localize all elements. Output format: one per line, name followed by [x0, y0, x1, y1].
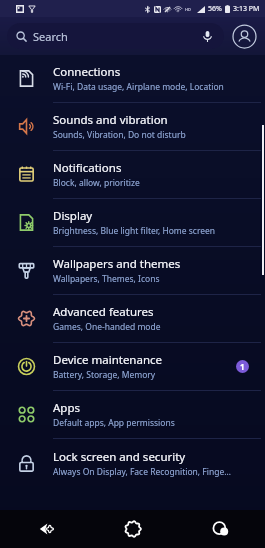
- staticText: Connections: [53, 64, 121, 80]
- staticText: Wallpapers and themes: [53, 256, 181, 272]
- staticText: Wallpapers, Themes, Icons: [53, 273, 160, 285]
- button[interactable]: Connections: [0, 55, 265, 103]
- button[interactable]: Back: [0, 510, 89, 548]
- staticText: Device maintenance: [53, 352, 163, 368]
- staticText: 1: [240, 361, 245, 372]
- staticText: Games, One-handed mode: [53, 321, 161, 333]
- staticText: Wi-Fi, Data usage, Airplane mode, Locati…: [53, 81, 224, 93]
- button[interactable]: Lock screen and security: [0, 439, 265, 487]
- button[interactable]: Display: [0, 199, 265, 247]
- staticText: Block, allow, prioritize: [53, 177, 140, 189]
- staticText: Advanced features: [53, 304, 154, 320]
- button[interactable]: Account: [231, 23, 258, 50]
- button[interactable]: Device maintenance: [0, 343, 265, 391]
- button[interactable]: Wallpapers and themes: [0, 247, 265, 295]
- button[interactable]: Voice search: [199, 28, 215, 44]
- button[interactable]: Recents: [177, 510, 265, 548]
- button[interactable]: Sounds and vibration: [0, 103, 265, 151]
- staticText: Always On Display, Face Recognition, Fin…: [53, 466, 231, 478]
- staticText: 3:13 PM: [233, 4, 260, 14]
- staticText: Notifications: [53, 160, 122, 176]
- staticText: Brightness, Blue light filter, Home scre…: [53, 225, 216, 237]
- staticText: Default apps, App permissions: [53, 417, 175, 429]
- button[interactable]: Apps: [0, 391, 265, 439]
- staticText: HD: [185, 7, 191, 12]
- staticText: Battery, Storage, Memory: [53, 369, 156, 381]
- staticText: 56%: [208, 4, 222, 14]
- staticText: Sounds, Vibration, Do not disturb: [53, 129, 186, 141]
- staticText: Sounds and vibration: [53, 112, 168, 128]
- button[interactable]: Home: [89, 510, 177, 548]
- button[interactable]: Notifications: [0, 151, 265, 199]
- staticText: Display: [53, 208, 93, 224]
- staticText: Lock screen and security: [53, 449, 186, 465]
- button[interactable]: Search: [7, 23, 224, 49]
- staticText: Apps: [53, 400, 81, 416]
- staticText: Search: [33, 29, 68, 44]
- button[interactable]: Advanced features: [0, 295, 265, 343]
